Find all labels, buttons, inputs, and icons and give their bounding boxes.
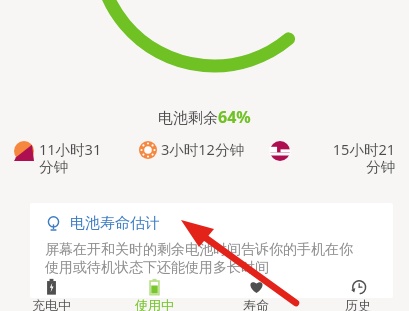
- staticText: 电池寿命估计: [70, 214, 160, 233]
- button[interactable]: History: [307, 273, 409, 311]
- staticText: 屏幕在开和关时的剩余电池时间告诉你的手机在你 使用或待机状态下还能使用多长时间: [45, 241, 353, 276]
- staticText: 3小时12分钟: [161, 139, 244, 159]
- button[interactable]: Charging: [0, 273, 103, 311]
- button[interactable]: Lifetime: [205, 273, 307, 311]
- button[interactable]: In use: [103, 273, 205, 311]
- staticText: 15小时21 分钟: [295, 139, 395, 176]
- staticText: 历史: [345, 297, 371, 311]
- staticText: 充电中: [32, 297, 71, 311]
- staticText: 64%: [218, 106, 251, 128]
- staticText: 11小时31 分钟: [39, 139, 139, 176]
- staticText: 电池剩余: [158, 109, 218, 128]
- staticText: 使用中: [135, 297, 174, 311]
- staticText: 寿命: [243, 297, 269, 311]
- button[interactable]: 电池寿命估计: [30, 203, 393, 298]
